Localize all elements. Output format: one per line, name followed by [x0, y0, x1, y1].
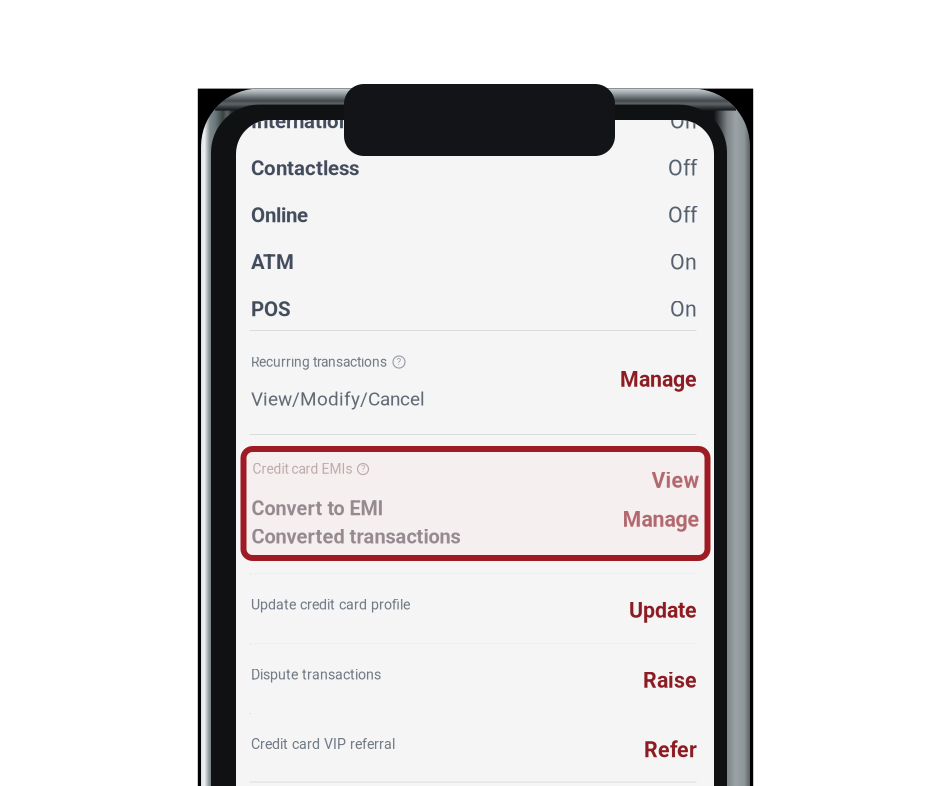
staticText: Off	[668, 156, 697, 181]
staticText: Update credit card profile	[251, 596, 410, 613]
staticText: Manage	[622, 507, 699, 532]
staticText: ATM	[251, 250, 294, 274]
staticText: Raise	[643, 668, 697, 693]
staticText: View/Modify/Cancel	[251, 388, 425, 410]
staticText: Refer	[644, 737, 697, 762]
staticText: ?	[396, 356, 401, 367]
button[interactable]: International	[251, 98, 697, 144]
staticText: Off	[668, 203, 697, 228]
staticText: On	[670, 250, 697, 275]
staticText: Credit card VIP referral	[251, 736, 395, 753]
staticText: Online	[251, 203, 308, 227]
button[interactable]: Online	[251, 192, 697, 238]
staticText: Dispute transactions	[251, 666, 381, 683]
staticText: Converted transactions	[251, 525, 460, 548]
button[interactable]: Credit card EMIs	[243, 449, 707, 558]
button[interactable]: Dispute transactions	[251, 643, 697, 713]
staticText: ?	[361, 463, 365, 474]
staticText: International	[251, 109, 366, 133]
button[interactable]: POS	[251, 286, 697, 332]
staticText: View	[651, 468, 699, 493]
staticText: On	[670, 297, 697, 322]
staticText: Convert to EMI	[251, 497, 383, 520]
staticText: POS	[251, 297, 291, 321]
staticText: Credit card EMIs	[252, 461, 352, 477]
button[interactable]: ATM	[251, 239, 697, 285]
staticText: Update	[629, 598, 697, 623]
button[interactable]: Contactless	[251, 145, 697, 191]
button[interactable]: Update credit card profile	[251, 573, 697, 643]
button[interactable]: Recurring transactions	[251, 331, 697, 434]
button[interactable]: Credit card VIP referral	[251, 713, 697, 781]
staticText: Contactless	[251, 156, 359, 180]
staticText: Recurring transactions	[251, 354, 387, 370]
staticText: Manage	[620, 367, 697, 392]
staticText: On	[670, 109, 697, 134]
